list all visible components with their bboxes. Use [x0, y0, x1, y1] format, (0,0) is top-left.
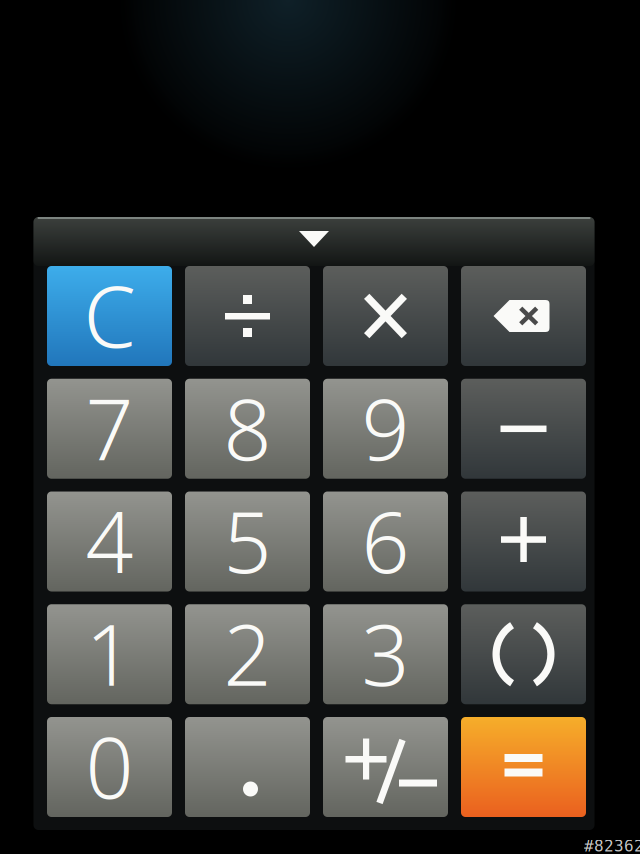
button[interactable]: Equals: [461, 717, 586, 817]
button[interactable]: Plus minus: [323, 717, 448, 817]
button[interactable]: Minus: [461, 379, 586, 479]
staticText: 9: [361, 372, 409, 483]
button[interactable]: Divide: [185, 266, 310, 366]
button[interactable]: Decimal point: [185, 717, 310, 817]
button[interactable]: 5: [185, 491, 310, 591]
staticText: 6: [361, 485, 409, 596]
button[interactable]: 6: [323, 491, 448, 591]
staticText: 5: [223, 485, 271, 596]
staticText: #82362: [584, 837, 640, 854]
button[interactable]: 3: [323, 604, 448, 704]
staticText: C: [83, 259, 135, 371]
button[interactable]: Plus: [461, 491, 586, 591]
staticText: 4: [85, 485, 133, 596]
staticText: 7: [85, 372, 133, 483]
button[interactable]: Hide keypad: [0, 0, 640, 854]
staticText: 2: [223, 597, 271, 709]
staticText: 3: [361, 597, 409, 709]
button[interactable]: 1: [47, 604, 172, 704]
staticText: 1: [85, 597, 133, 709]
button[interactable]: 2: [185, 604, 310, 704]
button[interactable]: Clear: [47, 266, 172, 366]
button[interactable]: 7: [47, 379, 172, 479]
button[interactable]: 8: [185, 379, 310, 479]
button[interactable]: 9: [323, 379, 448, 479]
button[interactable]: Delete: [461, 266, 586, 366]
button[interactable]: Multiply: [323, 266, 448, 366]
staticText: 8: [223, 372, 271, 483]
staticText: 0: [85, 710, 133, 822]
button[interactable]: 0: [47, 717, 172, 817]
button[interactable]: 4: [47, 491, 172, 591]
button[interactable]: Parentheses: [461, 604, 586, 704]
